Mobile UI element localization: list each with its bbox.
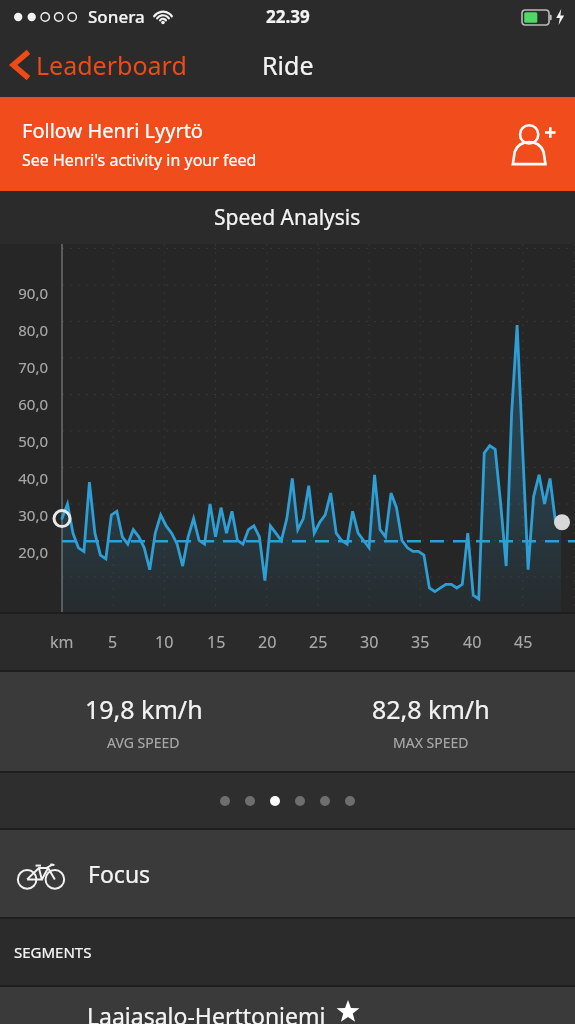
staticText: 30,0	[0, 505, 48, 525]
staticText: 82,8 km/h	[372, 692, 490, 726]
staticText: 60,0	[0, 394, 48, 414]
staticText: 5	[108, 631, 118, 653]
staticText: 40,0	[0, 468, 48, 488]
staticText: Sonera	[88, 5, 145, 28]
staticText: Ride	[262, 48, 314, 82]
button[interactable]: 82,8 km/h	[287, 692, 575, 752]
button[interactable]: Page 6	[345, 796, 355, 806]
button[interactable]: Page 2	[245, 796, 255, 806]
staticText: Speed Analysis	[214, 203, 361, 232]
staticText: 35	[411, 631, 430, 653]
staticText: 90,0	[0, 283, 48, 303]
staticText: SEGMENTS	[14, 942, 92, 962]
staticText: Focus	[88, 858, 151, 889]
staticText: km	[50, 631, 74, 653]
staticText: 25	[309, 631, 328, 653]
button[interactable]: 19,8 km/h	[0, 692, 287, 752]
staticText: 30	[360, 631, 379, 653]
button[interactable]: Leaderboard	[0, 40, 199, 90]
staticText: 10	[155, 631, 174, 653]
staticText: 80,0	[0, 320, 48, 340]
staticText: 20	[258, 631, 277, 653]
staticText: 50,0	[0, 431, 48, 451]
button[interactable]: Focus	[0, 829, 575, 918]
staticText: AVG SPEED	[107, 733, 180, 752]
button[interactable]: Page 4	[295, 796, 305, 806]
staticText: See Henri's activity in your feed	[22, 149, 257, 171]
button[interactable]: Laajasalo-Herttoniemi	[0, 986, 575, 1024]
staticText: Leaderboard	[36, 48, 187, 82]
staticText: 45	[514, 631, 533, 653]
staticText: 15	[207, 631, 226, 653]
staticText: Laajasalo-Herttoniemi	[87, 1000, 326, 1024]
staticText: MAX SPEED	[393, 733, 469, 752]
staticText: Follow Henri Lyyrtö	[22, 117, 203, 144]
button[interactable]: Follow Henri Lyyrtö	[0, 97, 575, 191]
staticText: 70,0	[0, 357, 48, 377]
staticText: 20,0	[0, 542, 48, 562]
staticText: 40	[463, 631, 482, 653]
staticText: 19,8 km/h	[85, 692, 203, 726]
button[interactable]: Follow	[509, 120, 557, 168]
button[interactable]: Page 1	[220, 796, 230, 806]
button[interactable]: Page 3	[270, 796, 280, 806]
button[interactable]: Page 5	[320, 796, 330, 806]
staticText: 22.39	[266, 5, 310, 28]
